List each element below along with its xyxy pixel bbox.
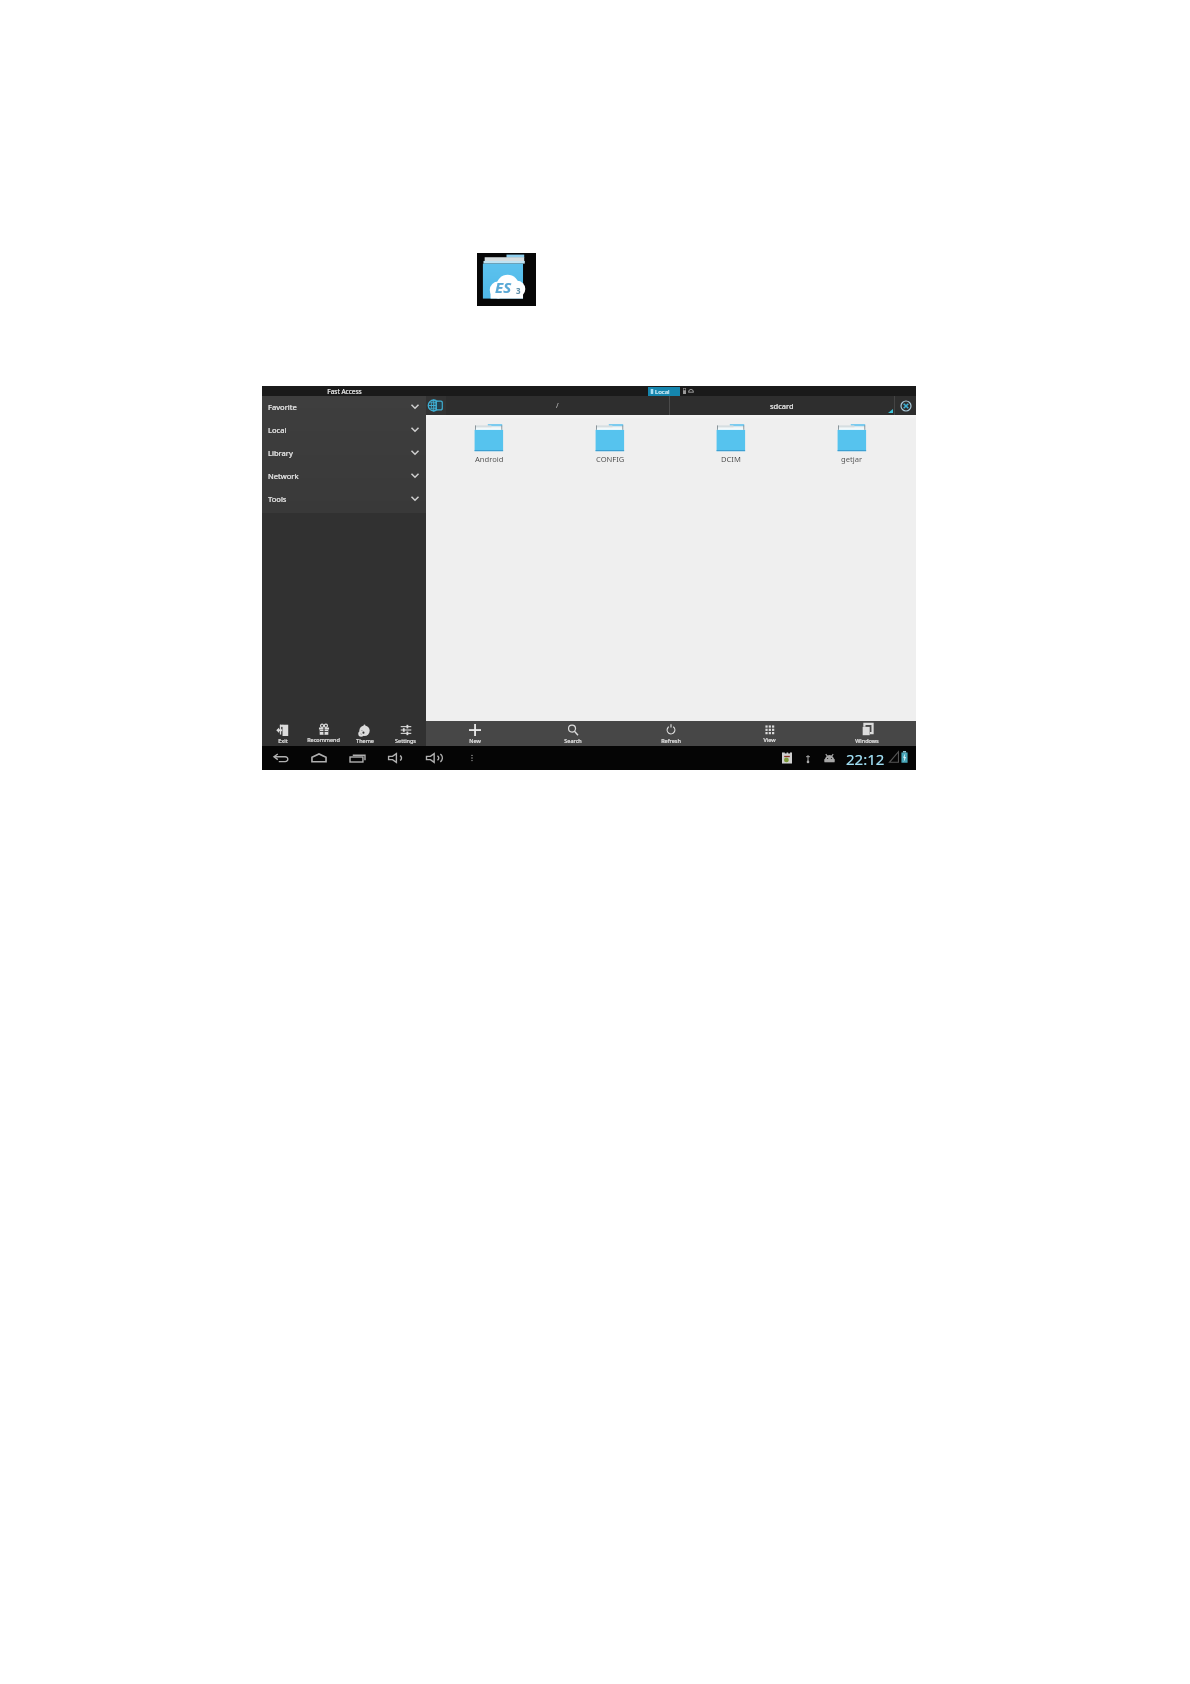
staticText: Exit bbox=[278, 737, 288, 744]
button[interactable]: CONFIG bbox=[578, 424, 642, 468]
staticText: Local bbox=[655, 388, 670, 396]
staticText: Theme bbox=[356, 737, 374, 744]
button[interactable]: More options bbox=[463, 749, 481, 767]
staticText: Search bbox=[564, 737, 582, 744]
button[interactable]: Exit bbox=[262, 721, 303, 746]
staticText: sdcard bbox=[770, 401, 794, 411]
staticText: Tools bbox=[268, 494, 287, 504]
staticText: getjar bbox=[841, 454, 863, 464]
button[interactable]: Tools bbox=[262, 487, 426, 510]
button[interactable]: Refresh bbox=[622, 721, 720, 746]
staticText: Recommend bbox=[307, 736, 340, 743]
staticText: CONFIG bbox=[596, 454, 625, 464]
staticText: 22:12 bbox=[846, 749, 885, 769]
button[interactable]: Back bbox=[272, 749, 290, 767]
button[interactable]: Volume down bbox=[386, 749, 404, 767]
staticText: Refresh bbox=[661, 737, 681, 744]
button[interactable]: getjar bbox=[820, 424, 884, 468]
button[interactable]: View bbox=[720, 721, 818, 746]
button[interactable]: Android bbox=[457, 424, 521, 468]
button[interactable]: Theme bbox=[344, 721, 385, 746]
staticText: DCIM bbox=[721, 454, 741, 464]
staticText: Windows bbox=[855, 737, 879, 744]
button[interactable]: Windows bbox=[818, 721, 916, 746]
button[interactable]: Local bbox=[648, 387, 680, 396]
button[interactable]: Close tab bbox=[895, 396, 916, 415]
staticText: Android bbox=[475, 454, 504, 464]
button[interactable]: Favorite bbox=[262, 395, 426, 418]
button[interactable]: sdcard bbox=[670, 396, 894, 415]
button[interactable]: ES File Explorer bbox=[477, 253, 536, 306]
button[interactable]: Volume up bbox=[425, 749, 443, 767]
staticText: Fast Access bbox=[327, 387, 362, 396]
staticText: New bbox=[469, 737, 481, 744]
button[interactable]: Settings bbox=[385, 721, 426, 746]
button[interactable]: Search bbox=[524, 721, 622, 746]
staticText: Library bbox=[268, 448, 293, 458]
button[interactable]: DCIM bbox=[699, 424, 763, 468]
staticText: 3 bbox=[516, 285, 521, 296]
staticText: View bbox=[763, 736, 776, 743]
button[interactable]: Local bbox=[262, 418, 426, 441]
staticText: Local bbox=[268, 425, 287, 435]
staticText: Settings bbox=[395, 737, 416, 744]
button[interactable]: Library bbox=[262, 441, 426, 464]
button[interactable]: Recommend bbox=[303, 721, 344, 746]
button[interactable]: Home bbox=[310, 749, 328, 767]
staticText: / bbox=[556, 401, 559, 411]
staticText: Favorite bbox=[268, 402, 297, 412]
button[interactable]: Recents bbox=[348, 749, 366, 767]
button[interactable]: Switch view bbox=[426, 396, 446, 415]
button[interactable]: New bbox=[426, 721, 524, 746]
staticText: ES bbox=[495, 277, 512, 297]
staticText: Network bbox=[268, 471, 299, 481]
button[interactable]: Network bbox=[262, 464, 426, 487]
